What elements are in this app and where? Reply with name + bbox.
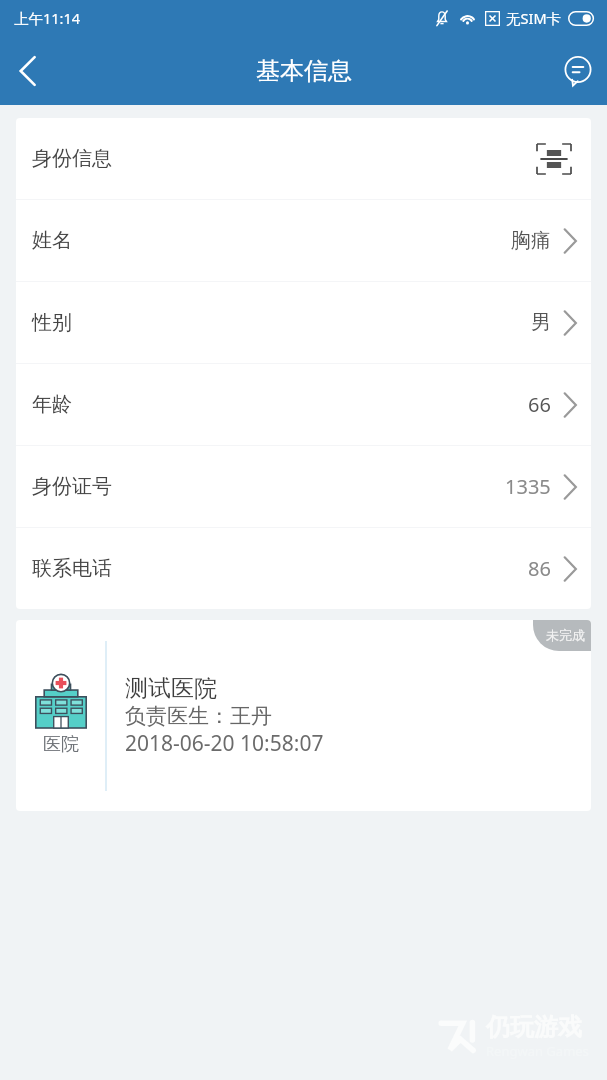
button[interactable]: 年龄 bbox=[16, 364, 591, 445]
staticText: 胸痛 bbox=[511, 228, 551, 253]
staticText: 身份信息 bbox=[32, 146, 112, 171]
button[interactable]: 医院 bbox=[16, 620, 591, 811]
staticText: 2018-06-20 10:58:07 bbox=[125, 729, 324, 758]
staticText: 上午11:14 bbox=[14, 8, 81, 28]
staticText: 未完成 bbox=[546, 627, 585, 643]
staticText: 联系电话 bbox=[32, 556, 112, 581]
staticText: 姓名 bbox=[32, 228, 72, 253]
staticText: 无SIM卡 bbox=[506, 8, 562, 28]
staticText: 男 bbox=[531, 310, 551, 335]
button[interactable]: 身份证号 bbox=[16, 446, 591, 527]
button[interactable]: Back bbox=[0, 44, 54, 98]
staticText: 测试医院 bbox=[125, 674, 217, 703]
button[interactable]: 联系电话 bbox=[16, 528, 591, 609]
button[interactable]: Scan ID card bbox=[533, 138, 575, 180]
staticText: 基本信息 bbox=[256, 56, 352, 86]
staticText: 身份证号 bbox=[32, 474, 112, 499]
staticText: 性别 bbox=[32, 310, 72, 335]
staticText: 医院 bbox=[43, 733, 79, 756]
button[interactable]: Messages bbox=[549, 42, 607, 100]
staticText: 66 bbox=[528, 391, 551, 418]
staticText: 仍玩游戏 bbox=[486, 1012, 582, 1042]
button[interactable]: 性别 bbox=[16, 282, 591, 363]
button[interactable]: 姓名 bbox=[16, 200, 591, 281]
staticText: 年龄 bbox=[32, 392, 72, 417]
staticText: 负责医生：王丹 bbox=[125, 703, 272, 729]
staticText: 1335 bbox=[505, 473, 551, 500]
staticText: 86 bbox=[528, 555, 551, 582]
button[interactable]: 身份信息 bbox=[16, 118, 591, 199]
